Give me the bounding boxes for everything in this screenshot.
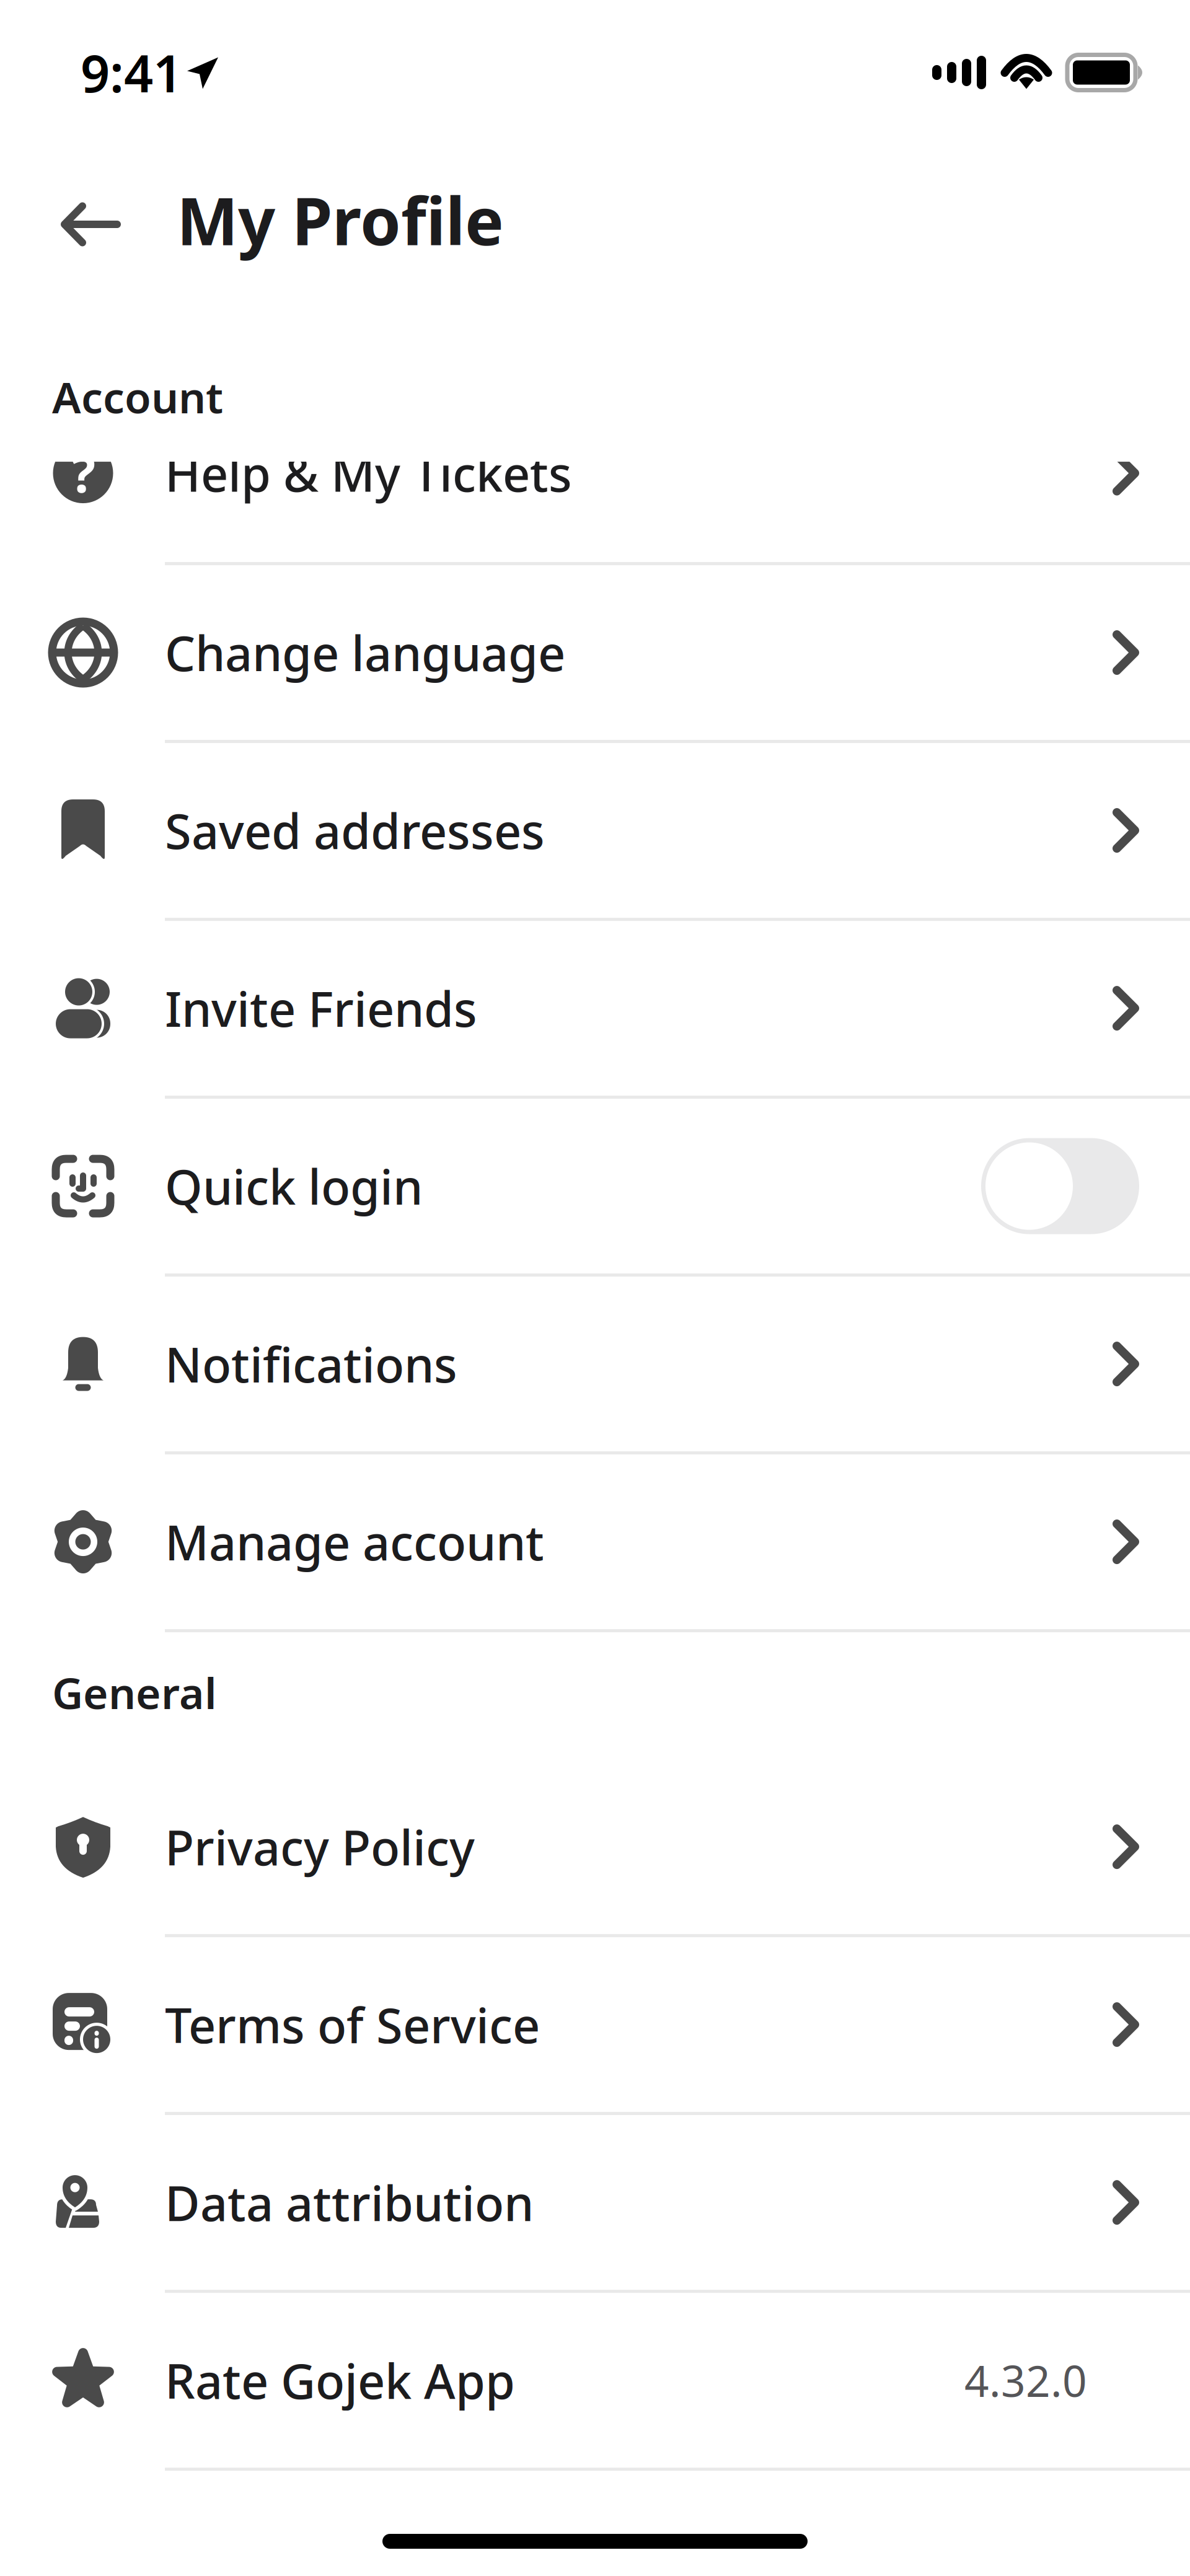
button[interactable]: Back: [0, 183, 177, 257]
staticText: Account: [52, 368, 223, 425]
staticText: Saved addresses: [165, 799, 545, 862]
button[interactable]: Terms of Service: [0, 1937, 1190, 2112]
button[interactable]: Quick login: [0, 1099, 1190, 1273]
button[interactable]: Manage account: [0, 1454, 1190, 1629]
staticText: ?: [71, 439, 95, 507]
button[interactable]: Privacy Policy: [0, 1759, 1190, 1934]
staticText: Invite Friends: [165, 976, 477, 1040]
staticText: Quick login: [165, 1154, 423, 1218]
button[interactable]: Invite Friends: [0, 921, 1190, 1096]
staticText: 9:41: [81, 38, 182, 107]
staticText: Rate Gojek App: [165, 2348, 515, 2412]
staticText: Privacy Policy: [165, 1815, 475, 1879]
staticText: General: [52, 1664, 217, 1721]
staticText: Manage account: [165, 1510, 544, 1574]
staticText: Terms of Service: [165, 1993, 540, 2056]
button[interactable]: Saved addresses: [0, 743, 1190, 918]
staticText: My Profile: [177, 177, 504, 263]
button[interactable]: Data attribution: [0, 2115, 1190, 2290]
staticText: Help & My Tickets: [165, 441, 572, 505]
button[interactable]: Change language: [0, 565, 1190, 740]
button[interactable]: Quick login: [981, 1138, 1139, 1234]
button[interactable]: Notifications: [0, 1277, 1190, 1451]
staticText: Change language: [165, 621, 565, 684]
staticText: 4.32.0: [964, 2352, 1087, 2409]
button[interactable]: Rate Gojek App: [0, 2293, 1190, 2468]
staticText: Notifications: [165, 1332, 457, 1396]
staticText: Data attribution: [165, 2171, 534, 2234]
button[interactable]: ?: [0, 462, 1190, 562]
